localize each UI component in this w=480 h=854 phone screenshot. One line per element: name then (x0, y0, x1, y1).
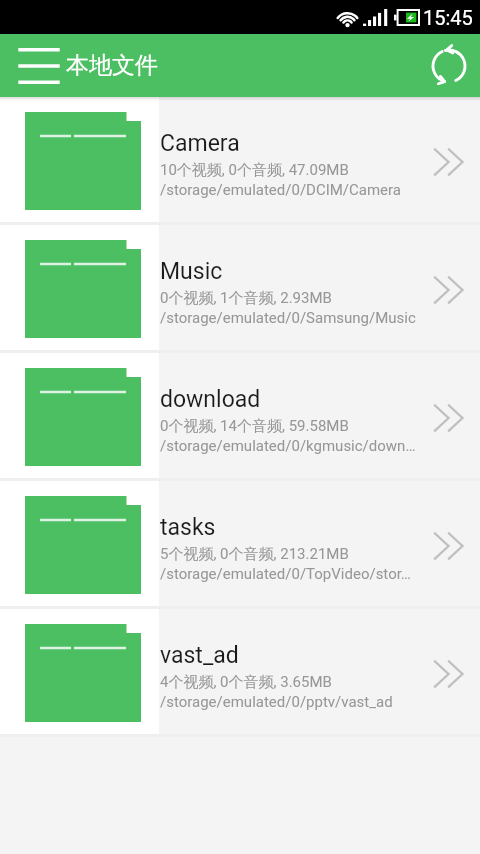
staticText: /storage/emulated/0/pptv/vast_ad (160, 693, 393, 711)
button[interactable]: Menu (0, 34, 63, 97)
staticText: Camera (160, 130, 240, 157)
staticText: 15:45 (423, 6, 473, 29)
button[interactable]: Refresh (417, 34, 480, 97)
staticText: 10个视频, 0个音频, 47.09MB (160, 161, 349, 180)
button[interactable]: tasks (0, 481, 480, 606)
staticText: 0个视频, 1个音频, 2.93MB (160, 289, 332, 308)
staticText: tasks (160, 514, 216, 541)
staticText: /storage/emulated/0/DCIM/Camera (160, 181, 402, 199)
button[interactable]: Music (0, 225, 480, 350)
button[interactable]: download (0, 353, 480, 478)
staticText: 5个视频, 0个音频, 213.21MB (160, 545, 349, 564)
staticText: 4个视频, 0个音频, 3.65MB (160, 673, 332, 692)
staticText: download (160, 386, 261, 413)
staticText: /storage/emulated/0/TopVideo/stor… (160, 565, 411, 583)
staticText: 0个视频, 14个音频, 59.58MB (160, 417, 349, 436)
staticText: vast_ad (160, 642, 239, 669)
staticText: 本地文件 (66, 51, 158, 80)
button[interactable]: vast_ad (0, 609, 480, 734)
staticText: /storage/emulated/0/kgmusic/down… (160, 437, 416, 455)
staticText: /storage/emulated/0/Samsung/Music (160, 309, 416, 327)
button[interactable]: Camera (0, 97, 480, 222)
staticText: Music (160, 258, 223, 285)
